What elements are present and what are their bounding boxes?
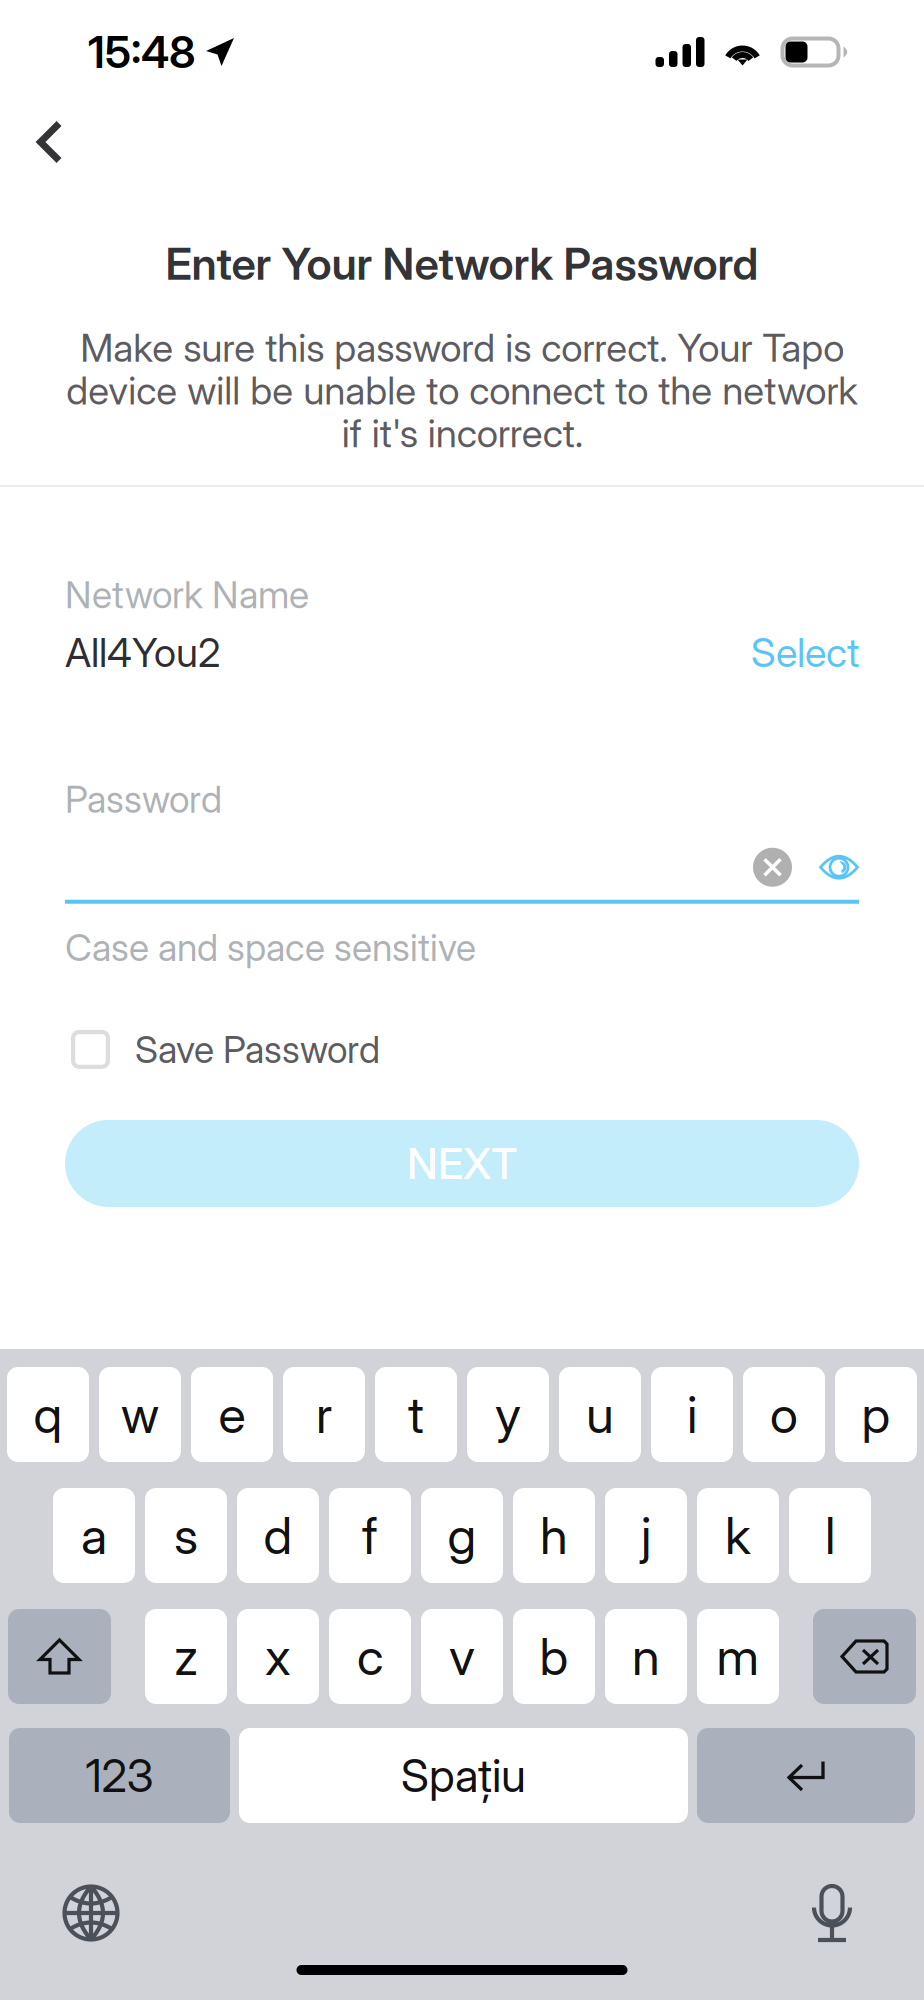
staticText: n [632,1626,660,1687]
staticText: u [586,1384,614,1445]
button[interactable]: g [421,1488,503,1583]
button[interactable]: a [53,1488,135,1583]
button[interactable]: i [651,1367,733,1462]
staticText: x [265,1626,291,1687]
button[interactable]: Return [697,1728,915,1823]
button[interactable]: f [329,1488,411,1583]
button[interactable]: h [513,1488,595,1583]
staticText: m [716,1626,759,1687]
button[interactable]: r [283,1367,365,1462]
button[interactable]: d [237,1488,319,1583]
button[interactable]: l [789,1488,871,1583]
button[interactable]: Dictation [790,1870,874,1955]
button[interactable]: c [329,1609,411,1704]
staticText: k [725,1505,751,1566]
staticText: y [495,1384,521,1445]
button[interactable]: z [145,1609,227,1704]
button[interactable]: Spațiu [239,1728,688,1823]
staticText: d [263,1505,292,1566]
button[interactable]: Clear text [753,848,792,887]
staticText: Enter Your Network Password [165,237,758,290]
staticText: Save Password [135,1027,380,1072]
staticText: b [539,1626,568,1687]
button[interactable]: y [467,1367,549,1462]
staticText: w [121,1384,159,1445]
button[interactable]: e [191,1367,273,1462]
button[interactable]: 123 [9,1728,230,1823]
button[interactable]: Next keyboard [48,1870,134,1956]
button[interactable]: k [697,1488,779,1583]
staticText: c [357,1626,383,1687]
staticText: o [770,1384,798,1445]
button[interactable]: p [835,1367,917,1462]
staticText: r [316,1384,332,1445]
staticText: Case and space sensitive [65,925,476,970]
button[interactable]: w [99,1367,181,1462]
button[interactable]: q [7,1367,89,1462]
staticText: s [174,1505,198,1566]
button[interactable]: Show password [819,853,859,881]
staticText: z [174,1626,198,1687]
button[interactable]: u [559,1367,641,1462]
staticText: Select [751,628,859,677]
button[interactable]: v [421,1609,503,1704]
staticText: v [449,1626,475,1687]
button[interactable]: t [375,1367,457,1462]
staticText: g [447,1505,476,1566]
staticText: p [861,1384,890,1445]
button[interactable]: Save Password [65,1030,380,1069]
staticText: Password [65,777,222,822]
button[interactable]: b [513,1609,595,1704]
button[interactable]: Shift [8,1609,111,1704]
staticText: i [687,1384,697,1445]
staticText: q [33,1384,62,1445]
staticText: NEXT [407,1138,517,1189]
button[interactable]: Delete [813,1609,916,1704]
staticText: Make sure this password is correct. Your… [66,324,858,457]
button[interactable]: o [743,1367,825,1462]
button[interactable]: x [237,1609,319,1704]
staticText: 15:48 [88,25,196,79]
button[interactable]: Select [751,628,859,677]
button[interactable]: n [605,1609,687,1704]
button[interactable]: Back [0,104,84,180]
button[interactable]: j [605,1488,687,1583]
staticText: 123 [85,1748,153,1803]
button[interactable]: NEXT [65,1120,859,1207]
button[interactable]: m [697,1609,779,1704]
staticText: t [408,1384,424,1445]
staticText: j [641,1505,651,1566]
staticText: e [218,1384,245,1445]
staticText: Spațiu [401,1748,526,1803]
staticText: a [81,1505,107,1566]
staticText: l [825,1505,835,1566]
staticText: h [540,1505,568,1566]
staticText: All4You2 [65,628,220,677]
button[interactable]: s [145,1488,227,1583]
staticText: f [362,1505,378,1566]
staticText: Network Name [65,572,309,617]
